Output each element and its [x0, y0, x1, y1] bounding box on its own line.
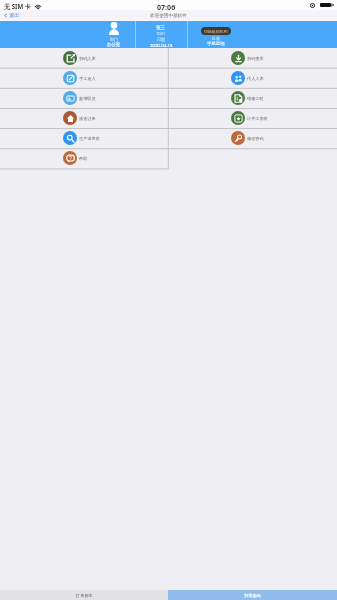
staticText: 生产进度表 [79, 136, 100, 141]
button[interactable]: 扫码入库 [0, 48, 168, 68]
staticText: 扫码查库 [247, 56, 264, 61]
staticText: 计件工资表 [247, 116, 268, 121]
staticText: 日期 [157, 37, 166, 42]
staticText: 手机监理 [207, 41, 225, 47]
staticText: 张三 [156, 25, 166, 31]
staticText: 部门 [110, 37, 119, 42]
staticText: 派送订单 [79, 116, 96, 121]
button[interactable]: 部门 [93, 21, 135, 48]
button[interactable]: 打单脚本 [0, 590, 168, 600]
staticText: 退出 [9, 12, 20, 19]
button[interactable]: 手工录入 [0, 68, 168, 88]
button[interactable]: 新增职员 [0, 88, 168, 108]
staticText: 机构 [212, 36, 221, 41]
staticText: 扫描条码 [244, 593, 261, 598]
staticText: 1001 [156, 31, 166, 37]
staticText: 打单脚本 [76, 593, 93, 598]
staticText: 无 SIM 卡 [4, 2, 31, 10]
button[interactable]: 张三 [135, 21, 187, 48]
staticText: 扫码入库 [79, 56, 96, 61]
staticText: 07:06 [157, 2, 176, 12]
staticText: 手工录入 [79, 76, 96, 81]
staticText: 修改密码 [247, 136, 264, 141]
button[interactable]: 计件工资表 [168, 108, 337, 128]
button[interactable]: 扫描条码 [168, 590, 337, 600]
staticText: 办公室 [107, 42, 121, 48]
staticText: 代人入库 [247, 76, 264, 81]
button[interactable]: 切换组织机构 [201, 27, 231, 35]
staticText: 欢迎使用中基软件 [150, 13, 187, 19]
staticText: 维修工时 [247, 96, 264, 101]
button[interactable]: 生产进度表 [0, 128, 168, 148]
staticText: 帮助 [79, 156, 88, 161]
button[interactable]: 维修工时 [168, 88, 337, 108]
staticText: 2020-04-15 [150, 42, 173, 48]
button[interactable]: 修改密码 [168, 128, 337, 148]
button[interactable]: 派送订单 [0, 108, 168, 128]
staticText: 切换组织机构 [204, 29, 228, 34]
staticText: 新增职员 [79, 96, 96, 101]
button[interactable]: 退出 [0, 12, 23, 19]
button[interactable]: 帮助 [0, 148, 168, 168]
button[interactable]: 代人入库 [168, 68, 337, 88]
button[interactable]: 扫码查库 [168, 48, 337, 68]
